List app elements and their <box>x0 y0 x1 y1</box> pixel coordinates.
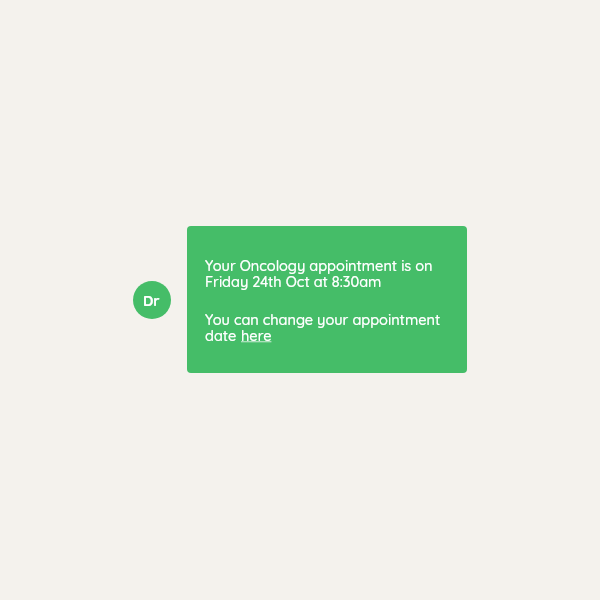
staticText: date <box>205 326 241 344</box>
staticText: You can change your appointment <box>205 310 441 328</box>
staticText: Dr <box>143 291 160 309</box>
button[interactable]: Doctor profile <box>133 281 171 319</box>
button[interactable]: Your Oncology appointment is on Friday 2… <box>187 226 467 373</box>
button[interactable]: here <box>241 326 272 344</box>
staticText: Your Oncology appointment is on Friday 2… <box>205 256 449 290</box>
